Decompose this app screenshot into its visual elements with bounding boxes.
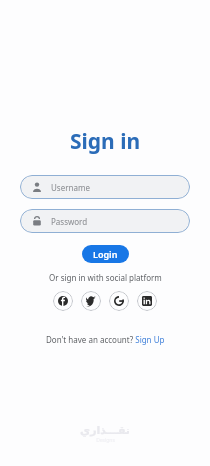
staticText: Username [51, 182, 90, 193]
staticText: Or sign in with social platform [49, 272, 162, 283]
staticText: نقـــذاري [80, 424, 130, 437]
staticText: Sign in [70, 127, 141, 156]
staticText: Login [93, 248, 118, 260]
staticText: Designs [96, 437, 115, 444]
button[interactable]: Sign in with Google [109, 291, 129, 311]
button[interactable]: Sign in with LinkedIn [137, 291, 157, 311]
staticText: Don't have an account? Sign Up [46, 334, 165, 345]
button[interactable]: Username [20, 175, 190, 199]
button[interactable]: Sign in with Facebook [53, 291, 73, 311]
button[interactable]: Login [82, 245, 129, 263]
button[interactable]: Sign in with Twitter [81, 291, 101, 311]
button[interactable]: Password [20, 209, 190, 233]
button[interactable]: Don't have an account? Sign Up [46, 334, 165, 345]
staticText: Password [51, 216, 88, 227]
